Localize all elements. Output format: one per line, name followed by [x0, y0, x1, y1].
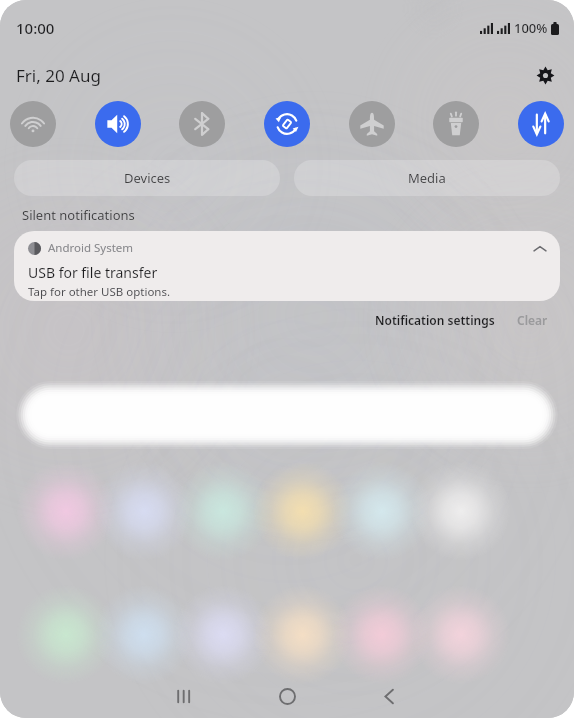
- staticText: Notification settings: [375, 312, 495, 328]
- button[interactable]: Bluetooth: [179, 101, 225, 147]
- button[interactable]: Recent apps: [157, 674, 213, 718]
- button[interactable]: Android System: [14, 231, 560, 301]
- staticText: Devices: [124, 169, 171, 187]
- button[interactable]: Settings: [526, 56, 564, 94]
- staticText: Media: [408, 169, 446, 187]
- staticText: Android System: [48, 240, 134, 256]
- button[interactable]: Flashlight: [433, 101, 479, 147]
- staticText: Tap for other USB options.: [28, 284, 171, 300]
- staticText: Silent notifications: [22, 206, 135, 224]
- staticText: USB for file transfer: [28, 263, 158, 282]
- button[interactable]: Devices: [14, 160, 280, 196]
- button[interactable]: Wi-Fi: [10, 101, 56, 147]
- staticText: Clear: [517, 312, 548, 328]
- button[interactable]: Home: [259, 674, 315, 718]
- button[interactable]: Auto rotate: [264, 101, 310, 147]
- button[interactable]: Back: [361, 674, 417, 718]
- button[interactable]: Airplane mode: [349, 101, 395, 147]
- button[interactable]: Notification settings: [371, 308, 499, 332]
- staticText: 10:00: [16, 18, 55, 38]
- staticText: 100%: [514, 19, 548, 37]
- button[interactable]: Mobile data: [518, 101, 564, 147]
- button[interactable]: Media: [294, 160, 560, 196]
- button[interactable]: Collapse: [526, 235, 554, 263]
- button[interactable]: Sound: [95, 101, 141, 147]
- staticText: Fri, 20 Aug: [16, 64, 101, 87]
- button[interactable]: Clear: [513, 308, 552, 332]
